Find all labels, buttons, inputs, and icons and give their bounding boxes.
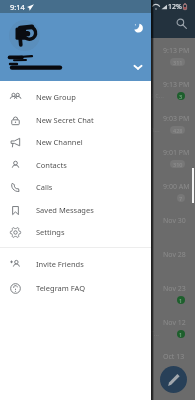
button[interactable]: Expand accounts — [130, 59, 145, 74]
staticText: 1 — [179, 297, 183, 304]
staticText: 9:13 PM — [163, 46, 190, 56]
staticText: Telegram FAQ — [36, 283, 86, 293]
staticText: 9:13 PM — [163, 80, 190, 90]
staticText: Contacts — [36, 160, 67, 170]
staticText: 9:00 AM — [163, 182, 190, 192]
staticText: 311 — [173, 59, 183, 66]
staticText: Settings — [36, 227, 65, 237]
button[interactable]: New Group — [0, 86, 151, 108]
button[interactable]: Contacts — [0, 154, 151, 176]
staticText: Saved Messages — [36, 205, 94, 215]
staticText: 7 — [179, 195, 183, 202]
button[interactable]: Profile photo — [9, 20, 40, 51]
staticText: Oct 13 — [163, 352, 185, 362]
button[interactable]: Invite Friends — [0, 253, 151, 275]
staticText: 428 — [173, 127, 183, 134]
staticText: h… — [150, 125, 160, 135]
button[interactable]: Calls — [0, 176, 151, 198]
staticText: Nov 28 — [163, 250, 186, 260]
staticText: 9:01 PM — [163, 148, 190, 158]
staticText: Nov 12 — [163, 318, 186, 328]
staticText: 12% — [168, 2, 182, 11]
button[interactable]: New Channel — [0, 131, 151, 153]
staticText: s c… — [150, 91, 165, 101]
staticText: New Group — [36, 92, 76, 102]
button[interactable]: New message — [160, 366, 187, 393]
button[interactable]: Settings — [0, 221, 151, 243]
button[interactable]: New Secret Chat — [0, 109, 151, 131]
staticText: Nov 23 — [163, 284, 186, 294]
button[interactable]: Saved Messages — [0, 199, 151, 221]
staticText: Invite Friends — [36, 259, 84, 269]
staticText: New Channel — [36, 137, 83, 147]
button[interactable]: Telegram FAQ — [0, 277, 151, 299]
staticText: 3 — [179, 93, 183, 100]
staticText: New Secret Chat — [36, 115, 94, 125]
button[interactable]: Search — [172, 14, 190, 32]
staticText: Nov 30 — [163, 216, 186, 226]
staticText: 9:03 PM — [163, 114, 190, 124]
staticText: 9:14 — [10, 2, 25, 12]
staticText: 310 — [173, 161, 183, 168]
staticText: Calls — [36, 182, 53, 192]
button[interactable]: Toggle night mode — [131, 20, 146, 35]
staticText: T… — [150, 329, 160, 339]
staticText: 1 — [179, 331, 183, 338]
